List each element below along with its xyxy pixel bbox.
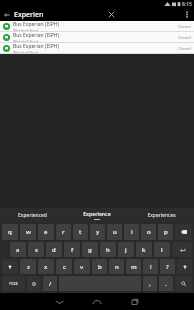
staticText: Experienced [18,212,47,219]
staticText: x [44,263,48,271]
staticText: z [27,263,30,271]
button[interactable]: h [100,242,116,257]
button[interactable]: r [56,224,71,240]
staticText: v [80,263,84,271]
staticText: r [62,228,65,236]
button[interactable]: Search [175,276,192,291]
staticText: b [98,263,102,271]
staticText: k [142,246,146,254]
staticText: s [35,246,38,254]
button[interactable]: a [10,242,26,257]
staticText: q [8,228,12,236]
button[interactable]: q [2,224,18,240]
button[interactable]: p [158,224,173,240]
staticText: Closed [178,24,191,29]
button[interactable]: Experienced [0,208,64,222]
button[interactable]: More options [180,8,193,21]
button[interactable]: t [73,224,88,240]
staticText: l [161,246,163,254]
staticText: 8:15 [182,1,192,8]
button[interactable]: Emoji [27,276,41,291]
button[interactable]: ! [143,259,158,274]
button[interactable]: Bus Experian (ISPH) [0,43,194,53]
button[interactable]: Experience [64,208,129,222]
staticText: Closed [178,46,191,51]
button[interactable]: b [92,259,107,274]
button[interactable]: g [82,242,98,257]
button[interactable]: Backspace [175,224,192,240]
staticText: . [165,280,167,288]
staticText: e [44,228,48,236]
button[interactable]: s [28,242,44,257]
button[interactable]: u [107,224,122,240]
staticText: f [71,246,74,254]
button[interactable]: Bus Experian (ISPH) [0,21,194,31]
button[interactable]: / [43,276,57,291]
button[interactable]: Navigate up [0,8,13,21]
staticText: Whitehall Road [13,50,38,53]
staticText: j [125,246,127,254]
staticText: / [49,280,52,288]
button[interactable]: i [124,224,139,240]
staticText: d [52,246,56,254]
staticText: Whitehall Road [13,28,38,31]
staticText: Experiences [147,212,176,219]
button[interactable]: , [143,276,157,291]
button[interactable]: l [154,242,170,257]
staticText: ! [150,263,152,271]
button[interactable]: Recents [123,293,147,310]
button[interactable]: Back [47,293,71,310]
staticText: c [63,263,66,271]
button[interactable]: w [20,224,36,240]
staticText: Whitehall Road [13,39,38,42]
staticText: i [131,228,133,236]
button[interactable]: Shift [2,259,18,274]
button[interactable]: j [118,242,134,257]
button[interactable]: z [20,259,36,274]
button[interactable]: v [74,259,90,274]
staticText: , [149,280,151,288]
button[interactable]: d [46,242,62,257]
button[interactable]: Bus Experian (ISPH) [0,32,194,42]
button[interactable]: x [38,259,54,274]
staticText: Experien [14,10,44,20]
staticText: Bus Experian (ISPH) [13,21,60,28]
button[interactable]: m [126,259,141,274]
staticText: ? [166,263,169,271]
staticText: Closed [178,35,191,40]
button[interactable]: y [90,224,105,240]
button[interactable]: Clear query [105,8,118,21]
staticText: p [164,228,168,236]
button[interactable]: c [56,259,72,274]
button[interactable]: Home [85,293,109,310]
button[interactable]: o [141,224,156,240]
staticText: w [26,228,31,236]
staticText: h [106,246,110,254]
button[interactable]: Enter [172,242,192,257]
staticText: Experience [83,211,111,218]
button[interactable]: . [159,276,173,291]
staticText: y [96,228,100,236]
button[interactable]: k [136,242,152,257]
staticText: o [147,228,151,236]
staticText: a [16,246,20,254]
staticText: t [79,228,82,236]
button[interactable]: Experiences [129,208,194,222]
button[interactable]: f [64,242,80,257]
staticText: g [88,246,92,254]
button[interactable]: ? [160,259,175,274]
staticText: u [113,228,117,236]
staticText: ?123 [9,281,18,286]
button[interactable]: e [38,224,54,240]
button[interactable]: Shift [177,259,192,274]
staticText: Bus Experian (ISPH) [13,43,60,50]
staticText: n [115,263,119,271]
staticText: m [131,263,137,271]
button[interactable]: n [109,259,124,274]
staticText: Bus Experian (ISPH) [13,32,60,39]
button[interactable]: Symbols [2,276,25,291]
